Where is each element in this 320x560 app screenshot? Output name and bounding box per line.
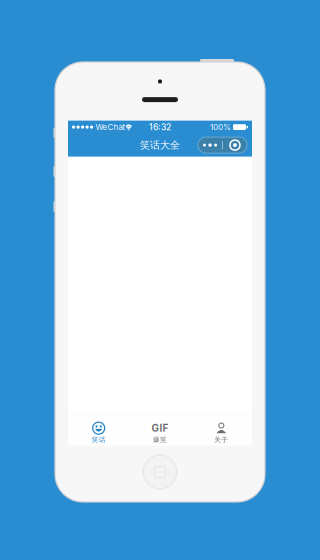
button[interactable]: GIF <box>129 415 191 446</box>
staticText: 100% <box>210 122 231 132</box>
staticText: 关于 <box>214 436 228 444</box>
staticText: WeChat <box>95 122 125 132</box>
staticText: GIF <box>151 422 168 434</box>
staticText: 爆笑 <box>153 436 167 444</box>
button[interactable]: 笑话 <box>68 415 129 446</box>
button[interactable]: 关于 <box>191 415 252 446</box>
staticText: 笑话 <box>92 436 106 444</box>
staticText: 16:32 <box>149 122 171 132</box>
button[interactable]: Mini program options and close <box>198 137 247 153</box>
staticText: 笑话大全 <box>140 139 180 151</box>
